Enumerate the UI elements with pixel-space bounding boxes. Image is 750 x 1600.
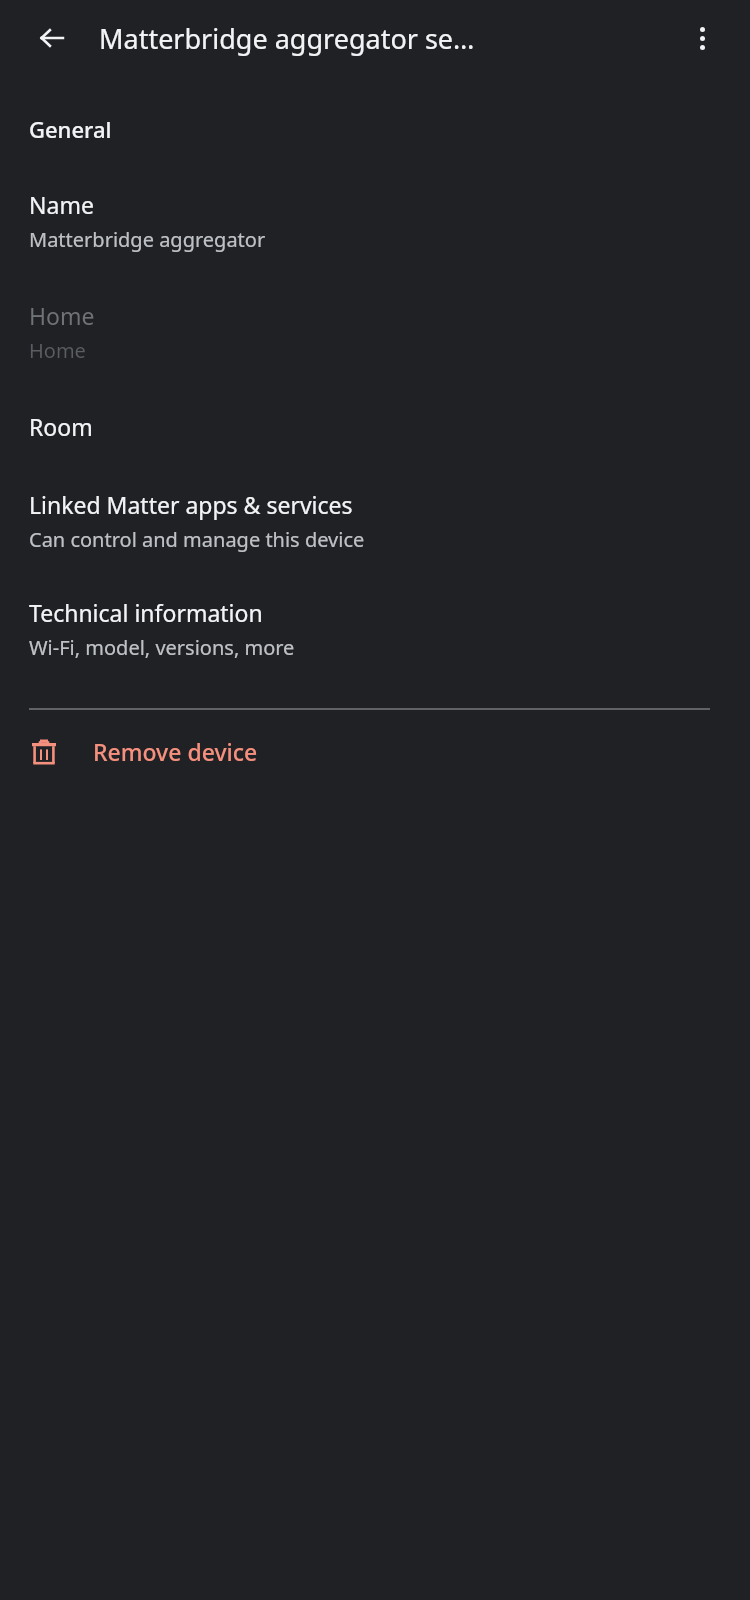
staticText: Matterbridge aggregator (29, 226, 266, 253)
staticText: Name (29, 189, 94, 220)
button[interactable]: More options (676, 12, 728, 64)
button[interactable]: Home (0, 300, 750, 364)
staticText: Remove device (93, 736, 258, 767)
staticText: Technical information (29, 597, 263, 628)
staticText: Can control and manage this device (29, 526, 365, 553)
staticText: Wi-Fi, model, versions, more (29, 634, 295, 661)
staticText: Home (29, 300, 95, 331)
button[interactable]: Remove device (0, 710, 750, 793)
staticText: Room (29, 411, 93, 442)
button[interactable]: Room (0, 411, 750, 442)
button[interactable]: Technical information (0, 597, 750, 661)
button[interactable]: Linked Matter apps & services (0, 489, 750, 553)
staticText: General (29, 114, 112, 144)
button[interactable]: Name (0, 189, 750, 253)
staticText: Home (29, 337, 86, 364)
staticText: Linked Matter apps & services (29, 489, 353, 520)
button[interactable]: Back (26, 12, 78, 64)
staticText: Matterbridge aggregator se… (99, 20, 475, 57)
